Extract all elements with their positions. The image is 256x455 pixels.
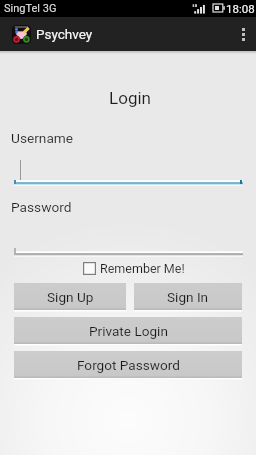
- staticText: Sign Up: [47, 289, 94, 305]
- button[interactable]: More options: [230, 17, 256, 51]
- staticText: Password: [11, 199, 72, 215]
- staticText: Sign In: [167, 289, 209, 305]
- staticText: Psychvey: [36, 26, 93, 42]
- staticText: Remember Me!: [100, 261, 185, 276]
- staticText: 18:08: [226, 2, 255, 15]
- staticText: Username: [11, 130, 74, 146]
- button[interactable]: Forgot Password: [14, 351, 242, 378]
- button[interactable]: Private Login: [14, 317, 242, 344]
- staticText: Forgot Password: [77, 357, 180, 373]
- staticText: SingTel 3G: [4, 2, 57, 15]
- button[interactable]: Sign Up: [14, 283, 126, 310]
- staticText: Login: [2, 88, 256, 108]
- staticText: Private Login: [89, 323, 168, 339]
- button[interactable]: Remember Me!: [83, 261, 185, 276]
- button[interactable]: Sign In: [134, 283, 242, 310]
